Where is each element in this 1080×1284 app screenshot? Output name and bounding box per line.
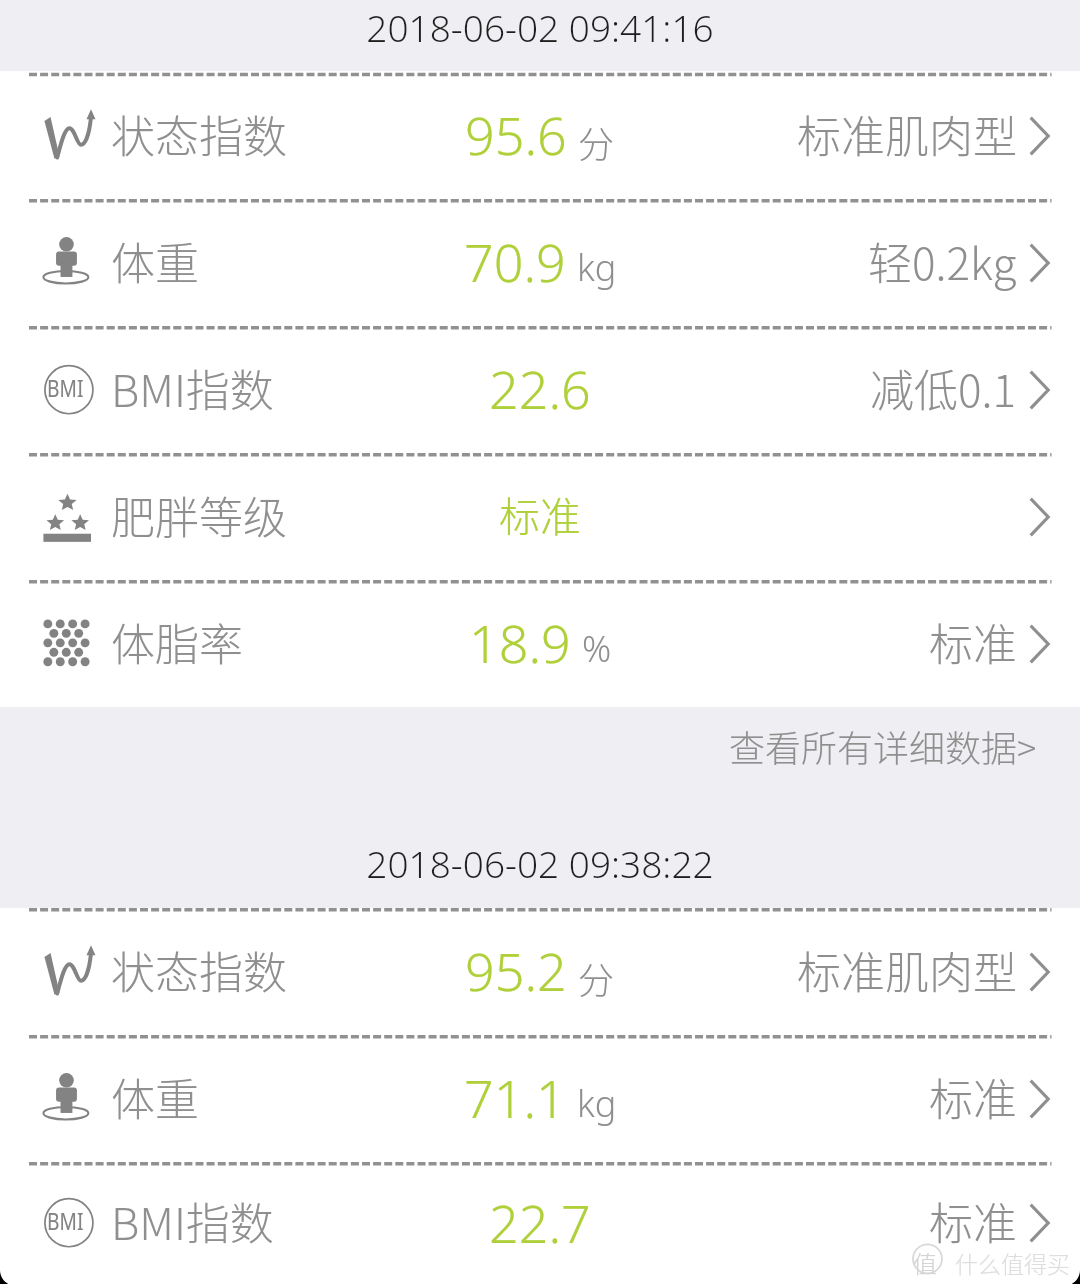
staticText: 95.2 (465, 935, 567, 1006)
staticText: 22.6 (489, 353, 591, 424)
button[interactable]: 体重 (0, 203, 1080, 326)
staticText: 22.7 (489, 1187, 591, 1258)
staticText: BMI指数 (111, 356, 274, 420)
staticText: 2018-06-02 09:38:22 (366, 838, 714, 888)
staticText: 标准 (929, 1189, 1017, 1253)
staticText: kg (577, 1079, 617, 1128)
staticText: 查看所有详细数据> (729, 720, 1037, 772)
staticText: 标准 (499, 484, 581, 543)
button[interactable]: 体脂率 (0, 584, 1080, 707)
staticText: 状态指数 (111, 938, 287, 1002)
staticText: 体重 (111, 229, 199, 293)
staticText: 标准肌肉型 (797, 938, 1017, 1002)
staticText: 18.9 (469, 607, 571, 678)
staticText: 减低0.1 (870, 356, 1017, 420)
other: 查看体重 详情 (1030, 244, 1050, 282)
staticText: 70.9 (464, 226, 566, 297)
staticText: BMI (47, 371, 84, 404)
staticText: 标准肌肉型 (797, 102, 1017, 166)
staticText: 什么值得买 (955, 1246, 1070, 1279)
other: 查看状态指数 详情 (1030, 117, 1050, 155)
staticText: 状态指数 (111, 102, 287, 166)
other: 查看BMI指数 详情 (1030, 371, 1050, 409)
staticText: 2018-06-02 09:41:16 (366, 2, 714, 52)
staticText: 标准 (929, 610, 1017, 674)
staticText: 分 (578, 952, 615, 1004)
staticText: % (582, 624, 612, 673)
other: 查看状态指数 详情 (1030, 953, 1050, 991)
staticText: 体重 (111, 1065, 199, 1129)
button[interactable]: BMI (0, 330, 1080, 453)
button[interactable]: 状态指数 (0, 76, 1080, 199)
button[interactable]: 肥胖等级 (0, 457, 1080, 580)
staticText: 体脂率 (111, 610, 243, 674)
staticText: 肥胖等级 (111, 483, 287, 547)
staticText: 标准 (929, 1065, 1017, 1129)
button[interactable]: 体重 (0, 1039, 1080, 1162)
other: 查看肥胖等级 详情 (1030, 498, 1050, 536)
staticText: kg (577, 243, 617, 292)
staticText: 轻0.2kg (868, 229, 1017, 293)
button[interactable]: 状态指数 (0, 912, 1080, 1035)
staticText: 值 (913, 1245, 937, 1280)
other: 什么值得买 水印 (890, 1220, 1080, 1284)
staticText: 71.1 (464, 1062, 566, 1133)
staticText: BMI (47, 1204, 84, 1237)
staticText: 95.6 (465, 99, 567, 170)
staticText: 分 (578, 116, 615, 168)
other: 查看BMI指数 详情 (1030, 1204, 1050, 1242)
staticText: BMI指数 (111, 1189, 274, 1253)
button[interactable]: BMI (0, 1166, 1080, 1284)
other: 查看体脂率 详情 (1030, 625, 1050, 663)
button[interactable]: 查看所有详细数据> (723, 714, 1043, 778)
other: 查看体重 详情 (1030, 1080, 1050, 1118)
